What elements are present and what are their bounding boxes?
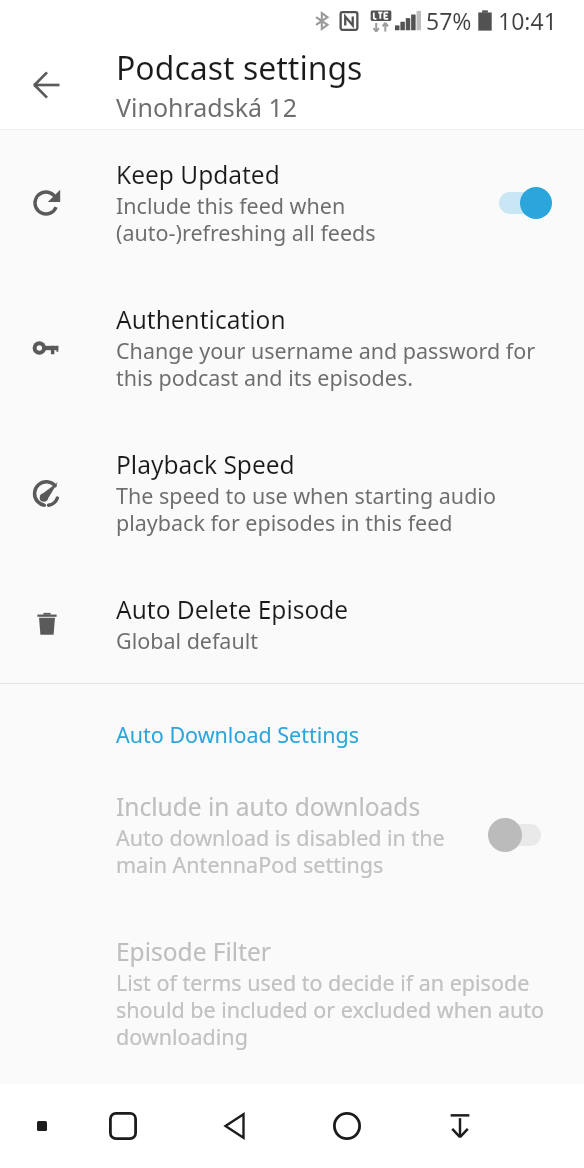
staticText: Authentication — [116, 303, 286, 336]
staticText: Include this feed when (auto-)refreshing… — [116, 191, 376, 247]
button[interactable]: Back — [203, 1094, 267, 1158]
staticText: List of terms used to decide if an episo… — [116, 968, 545, 1051]
staticText: Episode Filter — [116, 935, 271, 968]
button[interactable]: Episode Filter — [0, 907, 584, 1079]
staticText: Podcast settings — [116, 46, 363, 90]
button[interactable]: Recent apps — [91, 1094, 155, 1158]
staticText: Global default — [116, 626, 259, 655]
button[interactable]: Show keyboard — [10, 1094, 74, 1158]
button[interactable]: Navigate up — [18, 57, 74, 113]
button[interactable]: Auto Download Settings — [0, 716, 584, 753]
button[interactable]: Hide keyboard — [428, 1094, 492, 1158]
staticText: 10:41 — [498, 5, 557, 36]
button[interactable]: Playback Speed — [0, 420, 584, 565]
staticText: Auto Delete Episode — [116, 593, 349, 626]
staticText: Include in auto downloads — [116, 790, 421, 823]
button[interactable]: Auto download toggle — [488, 818, 541, 852]
staticText: Auto download is disabled in the main An… — [116, 823, 445, 879]
staticText: Auto Download Settings — [116, 720, 360, 749]
button[interactable]: Keep Updated — [0, 130, 584, 275]
staticText: Change your username and password for th… — [116, 336, 536, 392]
staticText: Keep Updated — [116, 158, 280, 191]
button[interactable]: Keep updated toggle — [499, 186, 552, 220]
button[interactable]: Authentication — [0, 275, 584, 420]
staticText: Vinohradská 12 — [116, 90, 298, 124]
staticText: 57% — [426, 5, 472, 36]
staticText: The speed to use when starting audio pla… — [116, 481, 496, 537]
button[interactable]: Auto Delete Episode — [0, 565, 584, 683]
button[interactable]: Include in auto downloads — [0, 762, 584, 907]
button[interactable]: Home — [315, 1094, 379, 1158]
staticText: Playback Speed — [116, 448, 295, 481]
